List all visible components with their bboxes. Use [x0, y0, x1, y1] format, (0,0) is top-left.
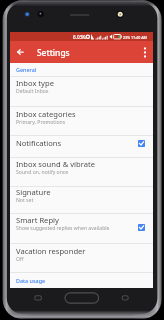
- staticText: Inbox type: [16, 78, 54, 88]
- button[interactable]: Inbox categories: [10, 107, 153, 135]
- staticText: 23%: [123, 35, 131, 40]
- staticText: Sound on, notify once: [16, 169, 69, 176]
- staticText: Off: [16, 256, 24, 263]
- staticText: Settings: [37, 47, 70, 58]
- staticText: Vacation responder: [16, 246, 86, 256]
- staticText: Primary, Promotions: [16, 119, 66, 126]
- staticText: Signature: [16, 187, 51, 197]
- button[interactable]: Smart Reply: [10, 214, 153, 243]
- staticText: Default Inbox: [16, 88, 49, 95]
- staticText: Not set: [16, 197, 34, 204]
- staticText: Inbox sound & vibrate: [16, 159, 95, 169]
- staticText: Data usage: [16, 277, 46, 284]
- button[interactable]: Inbox sound & vibrate: [10, 158, 153, 186]
- staticText: 11:40 AM: [131, 35, 147, 40]
- staticText: Smart Reply: [16, 215, 59, 225]
- button[interactable]: Back: [10, 41, 31, 63]
- staticText: Inbox categories: [16, 109, 76, 119]
- staticText: General: [16, 66, 37, 73]
- button[interactable]: Vacation responder: [10, 244, 153, 272]
- button[interactable]: Notifications: [10, 136, 153, 157]
- button[interactable]: Inbox type: [10, 77, 153, 106]
- staticText: Notifications: [16, 138, 62, 148]
- staticText: Show suggested replies when available: [16, 225, 110, 232]
- staticText: 6.03K/s: [73, 34, 90, 40]
- button[interactable]: More options: [137, 41, 153, 63]
- button[interactable]: Signature: [10, 187, 153, 213]
